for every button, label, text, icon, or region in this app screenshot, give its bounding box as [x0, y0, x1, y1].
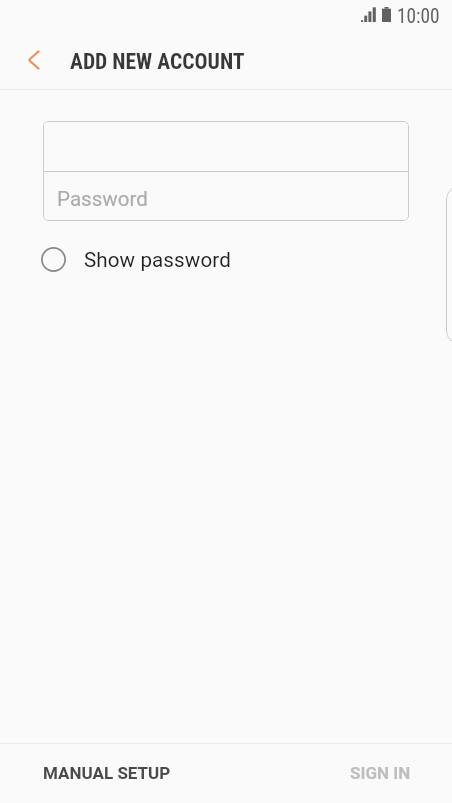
button[interactable]: Password [43, 172, 409, 221]
staticText: Show password [84, 248, 231, 272]
staticText: ADD NEW ACCOUNT [70, 49, 245, 74]
button[interactable]: MANUAL SETUP [0, 744, 201, 803]
staticText: 10:00 [397, 5, 440, 28]
staticText: SIGN IN [350, 763, 411, 783]
button[interactable]: Back [10, 39, 58, 87]
staticText: Password [57, 187, 148, 211]
button[interactable]: Show password [33, 239, 243, 279]
button[interactable]: SIGN IN [320, 744, 452, 803]
staticText: MANUAL SETUP [43, 763, 171, 783]
button[interactable] [43, 121, 409, 171]
